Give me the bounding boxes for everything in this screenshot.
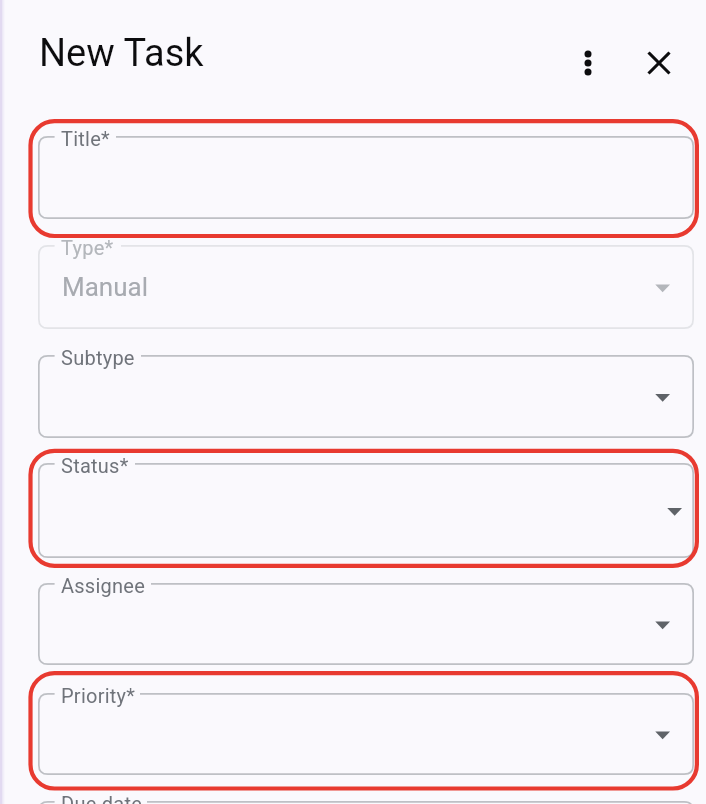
button[interactable]: Close [637, 41, 681, 85]
button[interactable]: Title* [38, 136, 694, 219]
staticText: Type* [61, 236, 114, 259]
button[interactable]: Assignee [38, 583, 694, 665]
staticText: Manual [62, 272, 148, 302]
staticText: Title* [61, 127, 110, 150]
staticText: Due date [61, 792, 143, 804]
staticText: Subtype [61, 346, 135, 369]
staticText: New Task [39, 31, 204, 76]
staticText: Status* [61, 454, 129, 477]
button[interactable]: Type* [38, 245, 694, 329]
staticText: Assignee [61, 574, 146, 597]
button[interactable]: New Task [39, 31, 204, 76]
staticText: Priority* [61, 684, 136, 707]
button[interactable]: Subtype [38, 355, 694, 438]
button[interactable]: More options [566, 41, 610, 85]
button[interactable]: Priority* [38, 693, 694, 775]
button[interactable]: Due date [38, 801, 694, 804]
button[interactable]: Status* [38, 463, 694, 558]
